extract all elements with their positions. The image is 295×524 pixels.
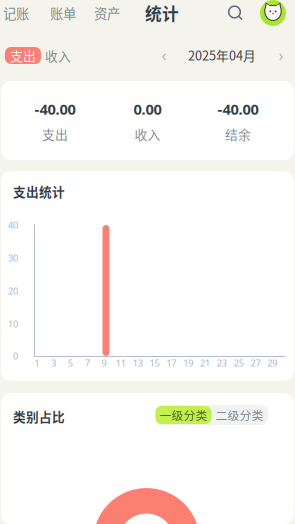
staticText: 40 <box>8 219 18 231</box>
staticText: -40.00 <box>34 99 75 119</box>
staticText: 13 <box>133 357 143 369</box>
staticText: 0 <box>13 350 18 362</box>
staticText: 结余 <box>225 125 251 143</box>
staticText: 11 <box>116 357 126 369</box>
button[interactable]: 个人中心 <box>260 0 286 26</box>
staticText: 支出统计 <box>13 182 65 200</box>
button[interactable]: 上个月 <box>156 46 172 64</box>
staticText: 15 <box>149 357 159 369</box>
staticText: 2025年04月 <box>188 46 256 64</box>
button[interactable]: 二级分类 <box>211 406 267 424</box>
button[interactable]: 收入 <box>45 47 71 64</box>
staticText: -40.00 <box>217 99 258 119</box>
staticText: 20 <box>8 285 18 297</box>
staticText: 29 <box>267 357 277 369</box>
staticText: 17 <box>166 357 176 369</box>
button[interactable]: 支出 <box>5 47 41 64</box>
button[interactable]: 一级分类 <box>155 406 211 424</box>
staticText: 1 <box>34 357 39 369</box>
staticText: 9 <box>101 357 106 369</box>
staticText: 5 <box>68 357 73 369</box>
staticText: 账单 <box>50 3 76 23</box>
staticText: 收入 <box>45 46 71 65</box>
button[interactable]: 统计 <box>145 0 179 26</box>
staticText: 0.00 <box>133 99 161 119</box>
button[interactable]: 下个月 <box>273 46 289 64</box>
staticText: 10 <box>8 318 18 330</box>
staticText: 支出 <box>10 46 36 65</box>
staticText: 27 <box>250 357 260 369</box>
staticText: 21 <box>200 357 210 369</box>
staticText: ‹ <box>161 44 166 66</box>
staticText: 资产 <box>94 3 120 23</box>
staticText: 支出 <box>42 125 68 143</box>
staticText: 收入 <box>134 125 160 143</box>
staticText: › <box>278 44 283 66</box>
staticText: 19 <box>183 357 193 369</box>
staticText: 23 <box>217 357 227 369</box>
staticText: 一级分类 <box>159 406 207 423</box>
button[interactable]: 账单 <box>48 0 78 26</box>
button[interactable]: 搜索 <box>225 3 245 23</box>
staticText: 3 <box>51 357 56 369</box>
button[interactable]: 资产 <box>92 0 122 26</box>
staticText: 二级分类 <box>215 406 263 423</box>
staticText: 7 <box>85 357 90 369</box>
staticText: 记账 <box>3 3 29 23</box>
staticText: 类别占比 <box>13 407 65 425</box>
staticText: 统计 <box>145 1 179 25</box>
button[interactable]: 记账 <box>1 0 31 26</box>
staticText: 30 <box>8 252 18 264</box>
staticText: 25 <box>234 357 244 369</box>
